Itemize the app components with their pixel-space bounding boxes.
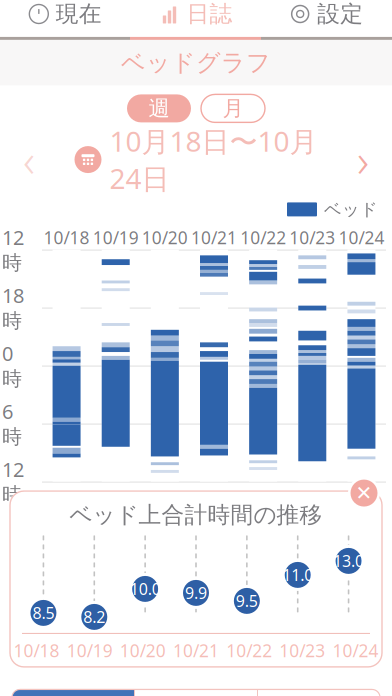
staticText: 11.0 <box>282 564 313 585</box>
staticText: 10月18日〜10月24日 <box>109 122 317 197</box>
button[interactable]: ♥ <box>135 689 257 696</box>
button[interactable]: 呼吸 <box>258 689 380 696</box>
staticText: ベッド <box>324 199 378 220</box>
staticText: 10/19 <box>93 226 139 249</box>
staticText: ✕ <box>355 482 372 504</box>
staticText: 10/24 <box>332 639 378 662</box>
button[interactable]: 閉じる <box>348 477 380 509</box>
staticText: 10/23 <box>279 639 325 662</box>
staticText: 10/18 <box>44 226 90 249</box>
staticText: 日誌 <box>186 0 232 28</box>
staticText: ‹ <box>23 129 35 190</box>
staticText: 現在 <box>56 0 102 28</box>
staticText: 週 <box>148 95 169 121</box>
staticText: ベッドグラフ <box>121 48 271 77</box>
button[interactable]: ベッド <box>12 689 134 696</box>
staticText: 12時 <box>2 456 24 507</box>
staticText: 10.0 <box>130 578 161 599</box>
staticText: 10/20 <box>120 639 166 662</box>
staticText: 10/22 <box>226 639 272 662</box>
button[interactable]: 設定 <box>261 0 392 37</box>
button[interactable]: 現在 <box>0 0 131 37</box>
staticText: 9.9 <box>185 582 207 603</box>
staticText: 10/21 <box>173 639 219 662</box>
staticText: 13.0 <box>333 550 364 571</box>
staticText: 10/18 <box>14 639 60 662</box>
staticText: 10/20 <box>142 226 188 249</box>
staticText: 10/21 <box>191 226 237 249</box>
button[interactable]: 日誌 <box>131 0 261 37</box>
staticText: 12時 <box>2 224 24 275</box>
staticText: 10/22 <box>240 226 286 249</box>
staticText: 9.5 <box>236 590 258 611</box>
staticText: 10/19 <box>67 639 113 662</box>
staticText: ベッド上合計時間の推移 <box>69 501 322 529</box>
button[interactable]: 前の週 <box>6 140 52 180</box>
staticText: › <box>357 129 369 190</box>
staticText: 8.5 <box>32 602 54 623</box>
button[interactable]: 次の週 <box>340 140 386 180</box>
staticText: 設定 <box>317 0 363 28</box>
staticText: 10/23 <box>289 226 335 249</box>
staticText: 0時 <box>2 340 22 391</box>
staticText: 8.2 <box>83 606 105 627</box>
staticText: 6時 <box>2 398 22 449</box>
button[interactable]: 週 <box>127 94 191 122</box>
staticText: 月 <box>222 95 243 121</box>
button[interactable]: 月 <box>201 94 265 122</box>
staticText: 10/24 <box>338 226 384 249</box>
staticText: 18時 <box>2 282 24 333</box>
